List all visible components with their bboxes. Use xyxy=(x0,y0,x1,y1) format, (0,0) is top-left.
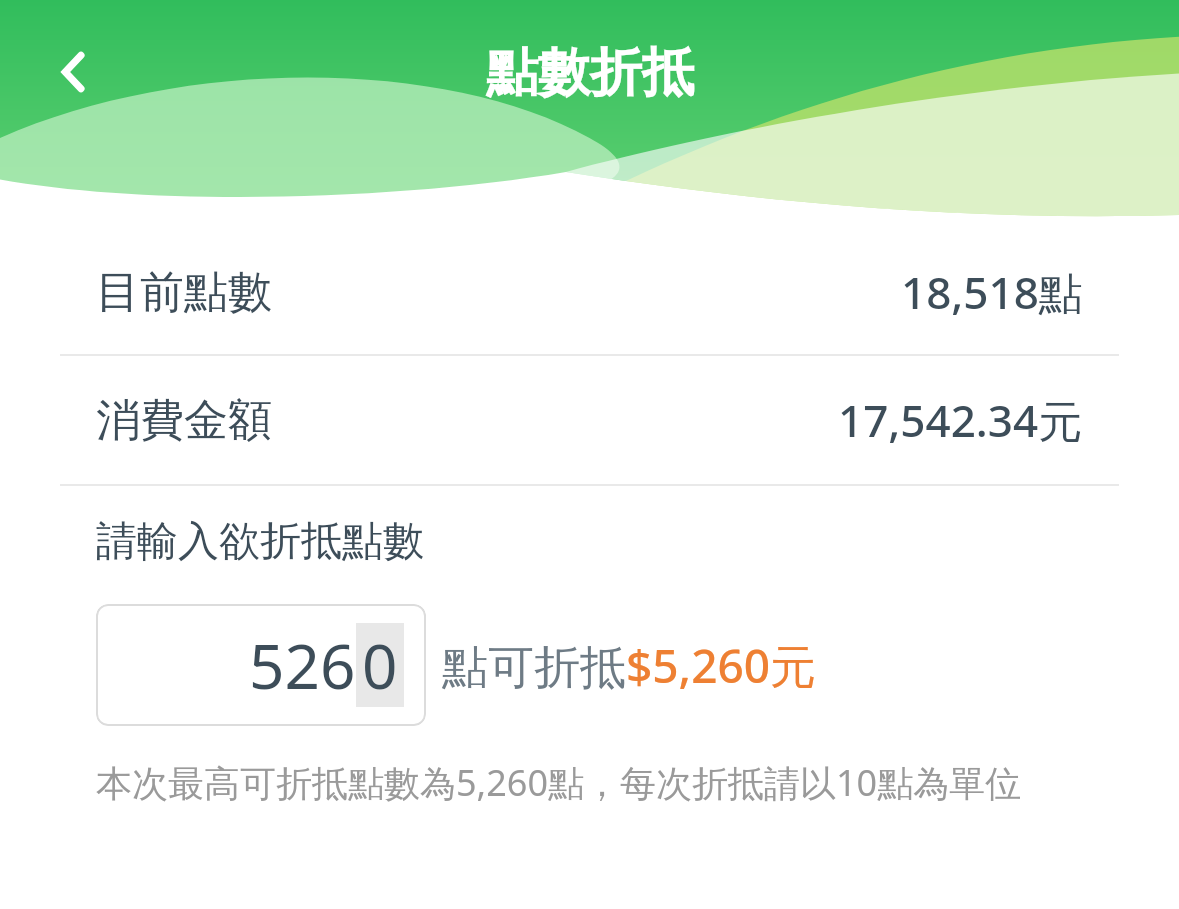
staticText: 請輸入欲折抵點數 xyxy=(96,516,424,568)
staticText: 消費金額 xyxy=(96,393,272,448)
staticText: 本次最高可折抵點數為5,260點，每次折抵請以10點為單位 xyxy=(96,758,1022,807)
button[interactable]: Back xyxy=(30,28,118,116)
staticText: 18,518點 xyxy=(901,262,1083,322)
button[interactable]: 消費金額 xyxy=(0,356,1179,484)
staticText: 17,542.34元 xyxy=(838,390,1083,450)
staticText: 點可折抵$5,260元 xyxy=(442,634,817,697)
staticText: 目前點數 xyxy=(96,265,272,320)
staticText: 526 xyxy=(249,623,356,707)
button[interactable]: 526 xyxy=(96,604,426,726)
staticText: 0 xyxy=(362,623,398,707)
button[interactable]: 目前點數 xyxy=(0,230,1179,354)
staticText: 點數折抵 xyxy=(486,40,694,106)
